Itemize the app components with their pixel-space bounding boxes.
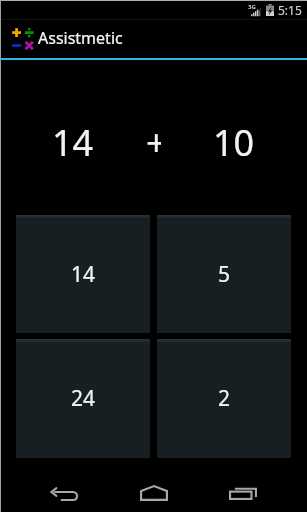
- staticText: 14: [71, 260, 96, 289]
- staticText: 5:15: [278, 2, 302, 18]
- button[interactable]: 14: [16, 215, 150, 333]
- button[interactable]: 2: [157, 339, 291, 458]
- staticText: +: [146, 118, 161, 158]
- button[interactable]: 5: [157, 215, 291, 333]
- staticText: 14: [52, 118, 94, 158]
- button[interactable]: 24: [16, 339, 150, 458]
- staticText: 2: [218, 384, 231, 413]
- staticText: 10: [213, 118, 255, 158]
- staticText: 24: [71, 384, 96, 413]
- staticText: 5: [218, 260, 231, 289]
- staticText: Assistmetic: [38, 27, 123, 49]
- button[interactable]: Back: [19, 460, 109, 512]
- staticText: 3G: [248, 3, 256, 11]
- button[interactable]: Home: [109, 460, 198, 512]
- button[interactable]: Recent apps: [198, 460, 288, 512]
